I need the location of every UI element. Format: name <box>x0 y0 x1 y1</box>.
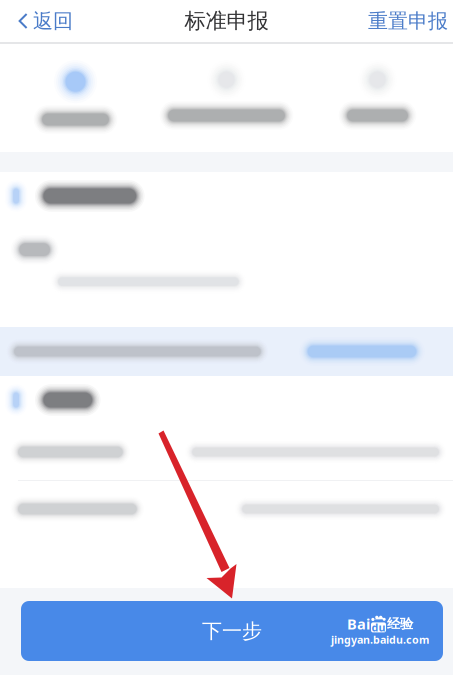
staticText: 返回 <box>33 9 73 33</box>
staticText: 标准申报 <box>184 8 268 34</box>
button[interactable] <box>0 44 151 152</box>
button[interactable]: 重置申报 <box>354 0 453 42</box>
staticText: 重置申报 <box>368 9 448 33</box>
button[interactable] <box>0 481 453 537</box>
staticText: 经验 <box>387 616 413 632</box>
button[interactable] <box>0 424 453 480</box>
button[interactable]: 下一步 <box>21 601 443 661</box>
button[interactable]: 查看说明 <box>297 334 427 368</box>
staticText: jingyan.baidu.com <box>331 632 429 647</box>
button[interactable] <box>151 44 302 152</box>
button[interactable] <box>302 44 453 152</box>
button[interactable]: 返回 <box>0 0 85 42</box>
staticText: du <box>371 620 385 634</box>
staticText: Bai <box>347 614 370 634</box>
staticText: 下一步 <box>202 619 262 643</box>
